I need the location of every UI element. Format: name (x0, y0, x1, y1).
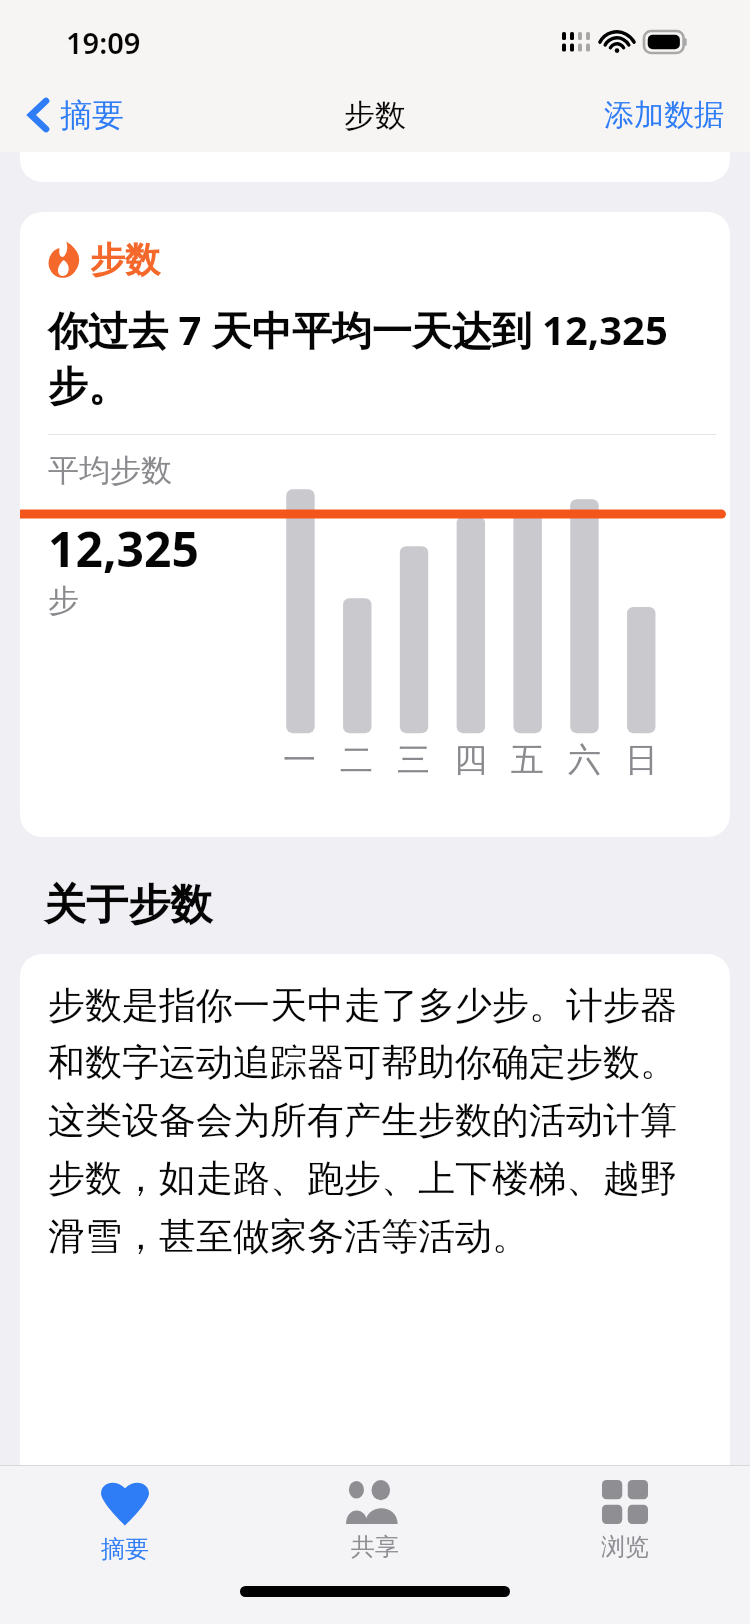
button[interactable]: 摘要 (22, 89, 130, 141)
button[interactable]: 浏览 (500, 1466, 750, 1576)
button[interactable]: 摘要 (0, 1466, 250, 1576)
staticText: 19:09 (66, 23, 141, 62)
staticText: 步数是指你一天中走了多少步。计步器和数字运动追踪器可帮助你确定步数。这类设备会为… (48, 982, 708, 1260)
other: 共享 (346, 1480, 404, 1524)
staticText: 日 (625, 739, 658, 781)
staticText: 二 (340, 739, 373, 781)
staticText: 摘要 (101, 1534, 149, 1564)
staticText: 三 (397, 739, 430, 781)
staticText: 步 (48, 581, 79, 620)
staticText: 步数 (344, 96, 406, 135)
staticText: 五 (511, 739, 544, 781)
staticText: 共享 (351, 1532, 399, 1562)
other: 浏览 (602, 1480, 648, 1524)
staticText: 你过去 7 天中平均一天达到 12,325 步。 (48, 302, 706, 412)
button[interactable]: 步数 (20, 212, 730, 837)
button[interactable]: 添加数据 (600, 88, 728, 142)
button[interactable]: 步数是指你一天中走了多少步。计步器和数字运动追踪器可帮助你确定步数。这类设备会为… (20, 954, 730, 1465)
staticText: 平均步数 (48, 451, 172, 490)
staticText: 12,325 (48, 516, 199, 581)
staticText: 四 (454, 739, 487, 781)
staticText: 六 (568, 739, 601, 781)
staticText: 浏览 (601, 1532, 649, 1562)
staticText: 关于步数 (44, 879, 212, 932)
button[interactable]: 共享 (250, 1466, 500, 1576)
staticText: 一 (283, 739, 316, 781)
other: 摘要 (100, 1480, 150, 1526)
staticText: 步数 (90, 238, 160, 282)
staticText: 摘要 (60, 95, 124, 135)
